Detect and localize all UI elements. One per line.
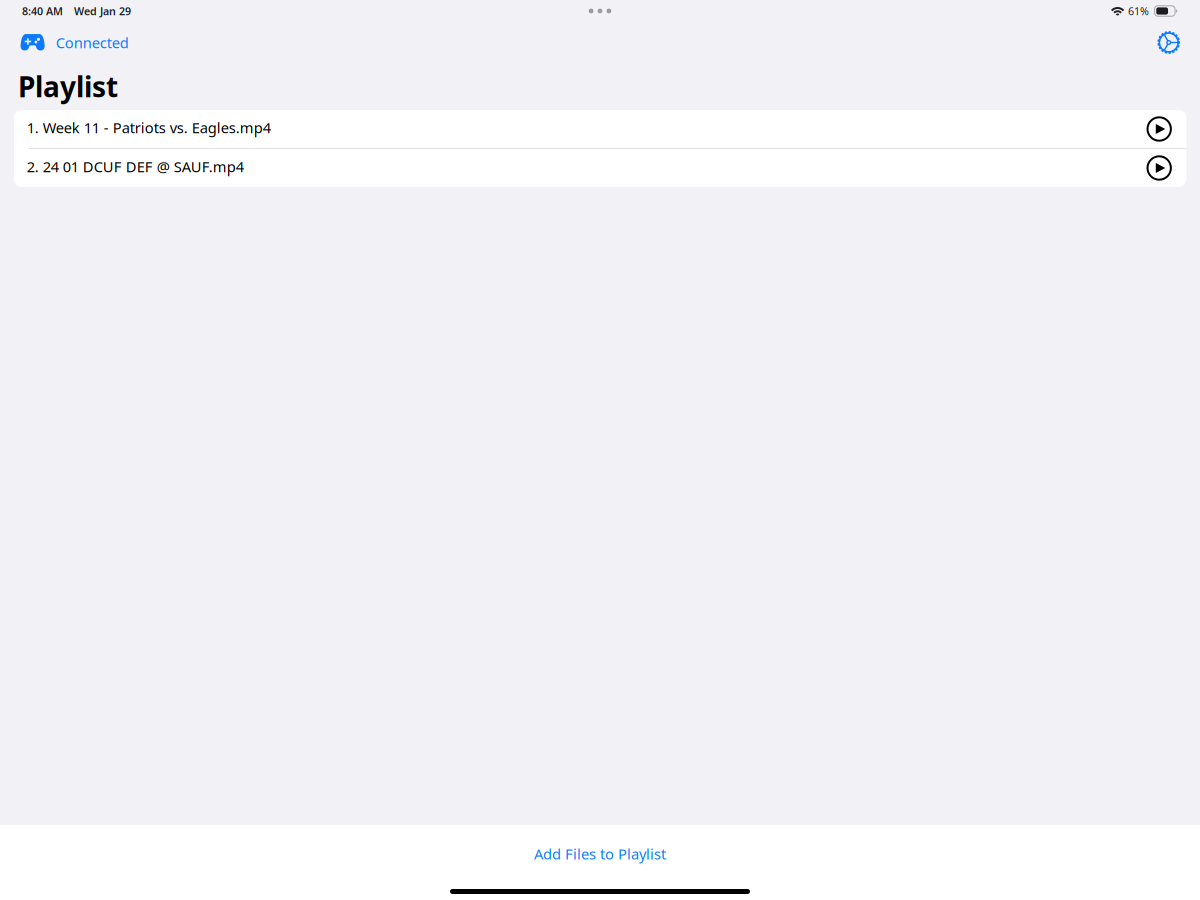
button[interactable]: Connected — [20, 30, 129, 55]
staticText: 61% — [1128, 4, 1149, 18]
staticText: Add Files to Playlist — [534, 844, 666, 863]
staticText: 8:40 AM — [22, 4, 63, 18]
button[interactable]: 2. 24 01 DCUF DEF @ SAUF.mp4 — [14, 149, 1186, 187]
button[interactable]: 1. Week 11 - Patriots vs. Eagles.mp4 — [14, 110, 1186, 148]
button[interactable]: Play 1. Week 11 - Patriots vs. Eagles.mp… — [1147, 117, 1171, 141]
button[interactable]: Add Files to Playlist — [518, 839, 682, 868]
staticText: Playlist — [18, 68, 118, 105]
button[interactable]: Settings — [1157, 28, 1180, 57]
staticText: Wed Jan 29 — [74, 4, 131, 18]
staticText: 2. 24 01 DCUF DEF @ SAUF.mp4 — [27, 157, 244, 176]
staticText: 1. Week 11 - Patriots vs. Eagles.mp4 — [27, 118, 271, 137]
button[interactable]: Play 2. 24 01 DCUF DEF @ SAUF.mp4 — [1147, 156, 1171, 180]
staticText: Connected — [56, 33, 129, 52]
